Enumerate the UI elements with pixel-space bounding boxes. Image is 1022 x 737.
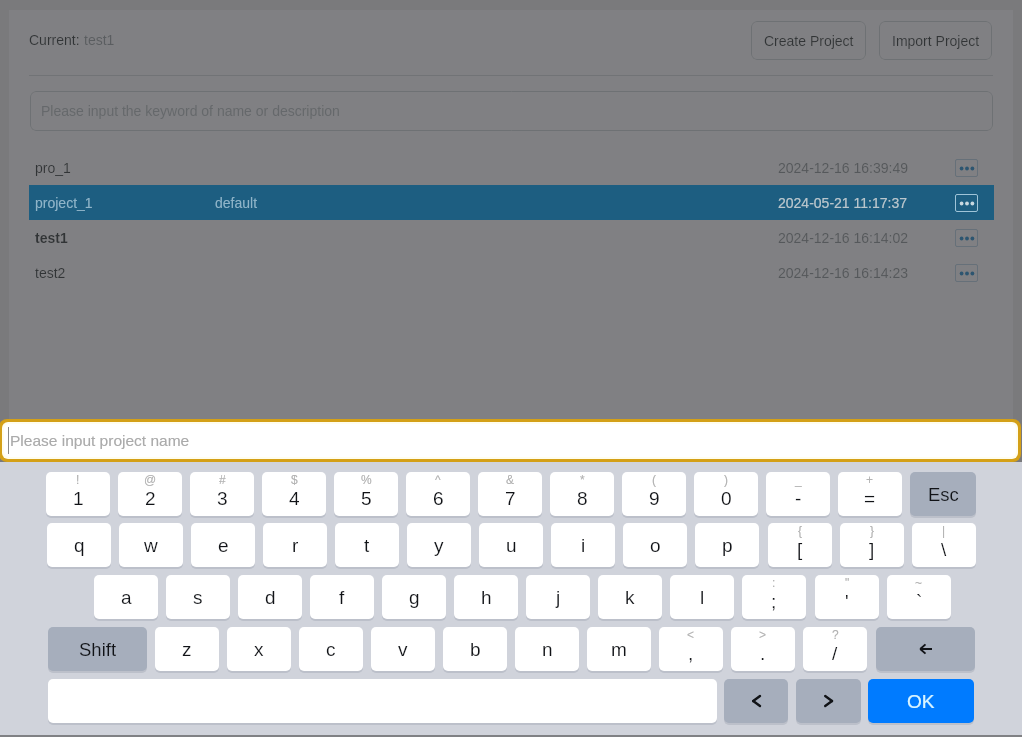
staticText: * xyxy=(580,473,585,486)
button[interactable]: Move cursor left xyxy=(724,679,788,723)
staticText: j xyxy=(556,587,561,608)
staticText: test2 xyxy=(35,265,66,281)
staticText: r xyxy=(292,535,299,556)
staticText: 2024-12-16 16:14:02 xyxy=(778,230,908,246)
button[interactable]: j xyxy=(526,575,590,619)
button[interactable]: & xyxy=(478,472,542,516)
button[interactable]: ~ xyxy=(887,575,951,619)
button[interactable]: k xyxy=(598,575,662,619)
button[interactable]: h xyxy=(454,575,518,619)
button[interactable]: " xyxy=(815,575,879,619)
staticText: e xyxy=(218,535,229,556)
button[interactable]: d xyxy=(238,575,302,619)
button[interactable]: m xyxy=(587,627,651,671)
button[interactable]: # xyxy=(190,472,254,516)
staticText: Shift xyxy=(79,639,117,660)
button[interactable]: y xyxy=(407,523,471,567)
button[interactable]: < xyxy=(659,627,723,671)
button[interactable]: q xyxy=(47,523,111,567)
button[interactable]: } xyxy=(840,523,904,567)
button[interactable]: : xyxy=(742,575,806,619)
button[interactable]: ) xyxy=(694,472,758,516)
button[interactable]: g xyxy=(382,575,446,619)
staticText: ~ xyxy=(915,576,923,589)
button[interactable]: t xyxy=(335,523,399,567)
staticText: v xyxy=(398,639,408,660)
staticText: Create Project xyxy=(764,33,854,49)
button[interactable]: More options xyxy=(955,159,978,177)
button[interactable]: { xyxy=(768,523,832,567)
staticText: & xyxy=(506,473,515,486)
button[interactable]: test1 xyxy=(29,220,994,255)
button[interactable]: $ xyxy=(262,472,326,516)
staticText: q xyxy=(74,535,85,556)
button[interactable]: c xyxy=(299,627,363,671)
button[interactable]: pro_1 xyxy=(29,150,994,185)
staticText: / xyxy=(832,643,838,664)
button[interactable]: * xyxy=(550,472,614,516)
button[interactable]: + xyxy=(838,472,902,516)
button[interactable]: x xyxy=(227,627,291,671)
button[interactable]: i xyxy=(551,523,615,567)
button[interactable]: Please input project name xyxy=(4,424,1016,457)
button[interactable]: ( xyxy=(622,472,686,516)
button[interactable]: _ xyxy=(766,472,830,516)
button[interactable]: @ xyxy=(118,472,182,516)
button[interactable]: z xyxy=(155,627,219,671)
button[interactable]: Move cursor right xyxy=(796,679,861,723)
staticText: ( xyxy=(652,473,656,486)
button[interactable]: More options xyxy=(955,264,978,282)
button[interactable]: More options xyxy=(955,194,978,212)
button[interactable]: Please input the keyword of name or desc… xyxy=(30,91,993,131)
button[interactable]: Create Project xyxy=(751,21,866,60)
button[interactable]: Import Project xyxy=(879,21,992,60)
button[interactable]: | xyxy=(912,523,976,567)
button[interactable]: r xyxy=(263,523,327,567)
button[interactable]: OK xyxy=(868,679,974,723)
button[interactable]: > xyxy=(731,627,795,671)
staticText: , xyxy=(688,643,694,664)
button[interactable]: project_1 xyxy=(29,185,994,220)
staticText: b xyxy=(470,639,481,660)
button[interactable]: test2 xyxy=(29,255,994,290)
staticText: ; xyxy=(771,591,777,612)
button[interactable]: Backspace xyxy=(876,627,975,671)
staticText: [ xyxy=(797,539,803,560)
staticText: . xyxy=(760,643,766,664)
button[interactable]: More options xyxy=(955,229,978,247)
button[interactable]: Shift xyxy=(48,627,147,671)
staticText: 8 xyxy=(577,488,588,509)
button[interactable]: n xyxy=(515,627,579,671)
button[interactable]: f xyxy=(310,575,374,619)
button[interactable]: a xyxy=(94,575,158,619)
staticText: 2024-05-21 11:17:37 xyxy=(778,195,907,211)
staticText: @ xyxy=(144,473,157,486)
button[interactable]: % xyxy=(334,472,398,516)
staticText: z xyxy=(182,639,192,660)
staticText: ^ xyxy=(435,473,441,486)
button[interactable]: s xyxy=(166,575,230,619)
staticText: : xyxy=(772,576,776,589)
staticText: Import Project xyxy=(892,33,980,49)
button[interactable]: v xyxy=(371,627,435,671)
staticText: | xyxy=(942,524,946,537)
button[interactable]: w xyxy=(119,523,183,567)
button[interactable]: p xyxy=(695,523,759,567)
button[interactable]: u xyxy=(479,523,543,567)
button[interactable]: o xyxy=(623,523,687,567)
button[interactable]: Esc xyxy=(910,472,976,516)
button[interactable]: b xyxy=(443,627,507,671)
staticText: 5 xyxy=(361,488,372,509)
staticText: Please input project name xyxy=(10,432,190,449)
staticText: 7 xyxy=(505,488,516,509)
staticText: t xyxy=(364,535,370,556)
button[interactable]: ^ xyxy=(406,472,470,516)
button[interactable]: ? xyxy=(803,627,867,671)
button[interactable]: e xyxy=(191,523,255,567)
button[interactable]: l xyxy=(670,575,734,619)
staticText: default xyxy=(215,195,258,211)
staticText: ] xyxy=(869,539,875,560)
button[interactable]: ! xyxy=(46,472,110,516)
